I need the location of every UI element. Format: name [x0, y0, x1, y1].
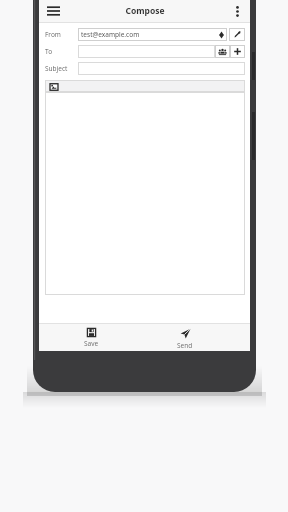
staticText: Save — [84, 339, 99, 348]
staticText: test@example.com — [81, 30, 219, 39]
button[interactable]: Save — [71, 324, 111, 351]
staticText: From — [45, 30, 61, 39]
button[interactable] — [78, 62, 245, 75]
button[interactable]: Edit sender — [229, 28, 245, 41]
button[interactable]: More options — [228, 2, 246, 20]
staticText: Subject — [45, 64, 68, 73]
button[interactable] — [45, 92, 245, 295]
button[interactable]: Add recipient — [230, 45, 245, 58]
button[interactable]: Menu — [43, 1, 63, 21]
staticText: To — [45, 47, 53, 56]
staticText: Compose — [125, 5, 165, 17]
button[interactable] — [78, 45, 215, 58]
staticText: Send — [177, 341, 193, 350]
button[interactable]: Insert image — [48, 81, 59, 92]
button[interactable]: Choose contacts — [215, 45, 230, 58]
button[interactable]: test@example.com — [78, 28, 227, 41]
button[interactable]: Send — [165, 324, 205, 351]
